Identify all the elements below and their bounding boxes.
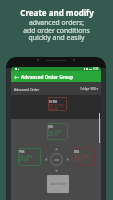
staticText: 829 +1.800 bbox=[19, 155, 33, 159]
staticText: 9:30 bbox=[93, 67, 99, 71]
staticText: FWS bbox=[19, 150, 25, 154]
button[interactable]: BTG bbox=[73, 148, 95, 166]
button[interactable]: JHG bbox=[47, 123, 68, 140]
button[interactable]: Options bbox=[50, 153, 63, 166]
staticText: g239.20 bbox=[74, 158, 84, 162]
staticText: advanced orders; add order conditions qu… bbox=[23, 18, 90, 42]
button[interactable]: HCBW bbox=[48, 97, 67, 111]
staticText: g674.00 bbox=[19, 158, 29, 162]
staticText: HCBW bbox=[49, 100, 58, 104]
staticText: g239.20 bbox=[48, 133, 58, 137]
staticText: Advanced Order bbox=[14, 87, 40, 91]
staticText: 981.5 -7.090 bbox=[49, 104, 64, 108]
staticText: Advanced Order Group bbox=[21, 74, 74, 80]
button[interactable]: Back bbox=[11, 72, 21, 82]
staticText: Add Trade bbox=[51, 182, 66, 186]
staticText: 981.5 -7.090 bbox=[74, 155, 89, 159]
staticText: Create and modify bbox=[20, 7, 94, 18]
staticText: gctn 00 bbox=[49, 107, 59, 111]
staticText: 829 +1.800 bbox=[48, 130, 62, 134]
button[interactable]: FWS bbox=[18, 148, 41, 166]
staticText: BTG bbox=[74, 150, 80, 154]
staticText: 1d Apr 900 ▾ bbox=[80, 87, 99, 91]
button[interactable]: Add Trade bbox=[47, 175, 69, 193]
staticText: ooo bbox=[54, 158, 60, 162]
staticText: JHG bbox=[48, 125, 53, 129]
